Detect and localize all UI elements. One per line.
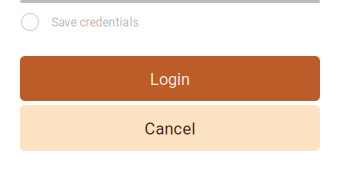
staticText: Cancel [144, 119, 195, 139]
button[interactable]: Cancel [0, 105, 340, 151]
staticText: Login [150, 70, 190, 89]
button[interactable]: Save credentials [0, 3, 340, 41]
staticText: Save credentials [51, 15, 138, 30]
button[interactable]: Login [0, 56, 340, 101]
